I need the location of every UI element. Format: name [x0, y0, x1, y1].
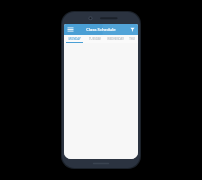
button[interactable]: WEDNESDAY [105, 35, 125, 43]
staticText: Class Schedule [86, 27, 116, 33]
button[interactable]: MONDAY [64, 35, 85, 43]
staticText: TUESDAY [89, 37, 101, 41]
button[interactable]: Open navigation menu [66, 24, 74, 35]
staticText: WEDNESDAY [107, 37, 124, 41]
button[interactable]: THU [125, 35, 138, 43]
button[interactable]: Filter [128, 24, 136, 35]
staticText: THU [129, 37, 135, 41]
button[interactable]: TUESDAY [85, 35, 105, 43]
staticText: MONDAY [68, 37, 81, 41]
